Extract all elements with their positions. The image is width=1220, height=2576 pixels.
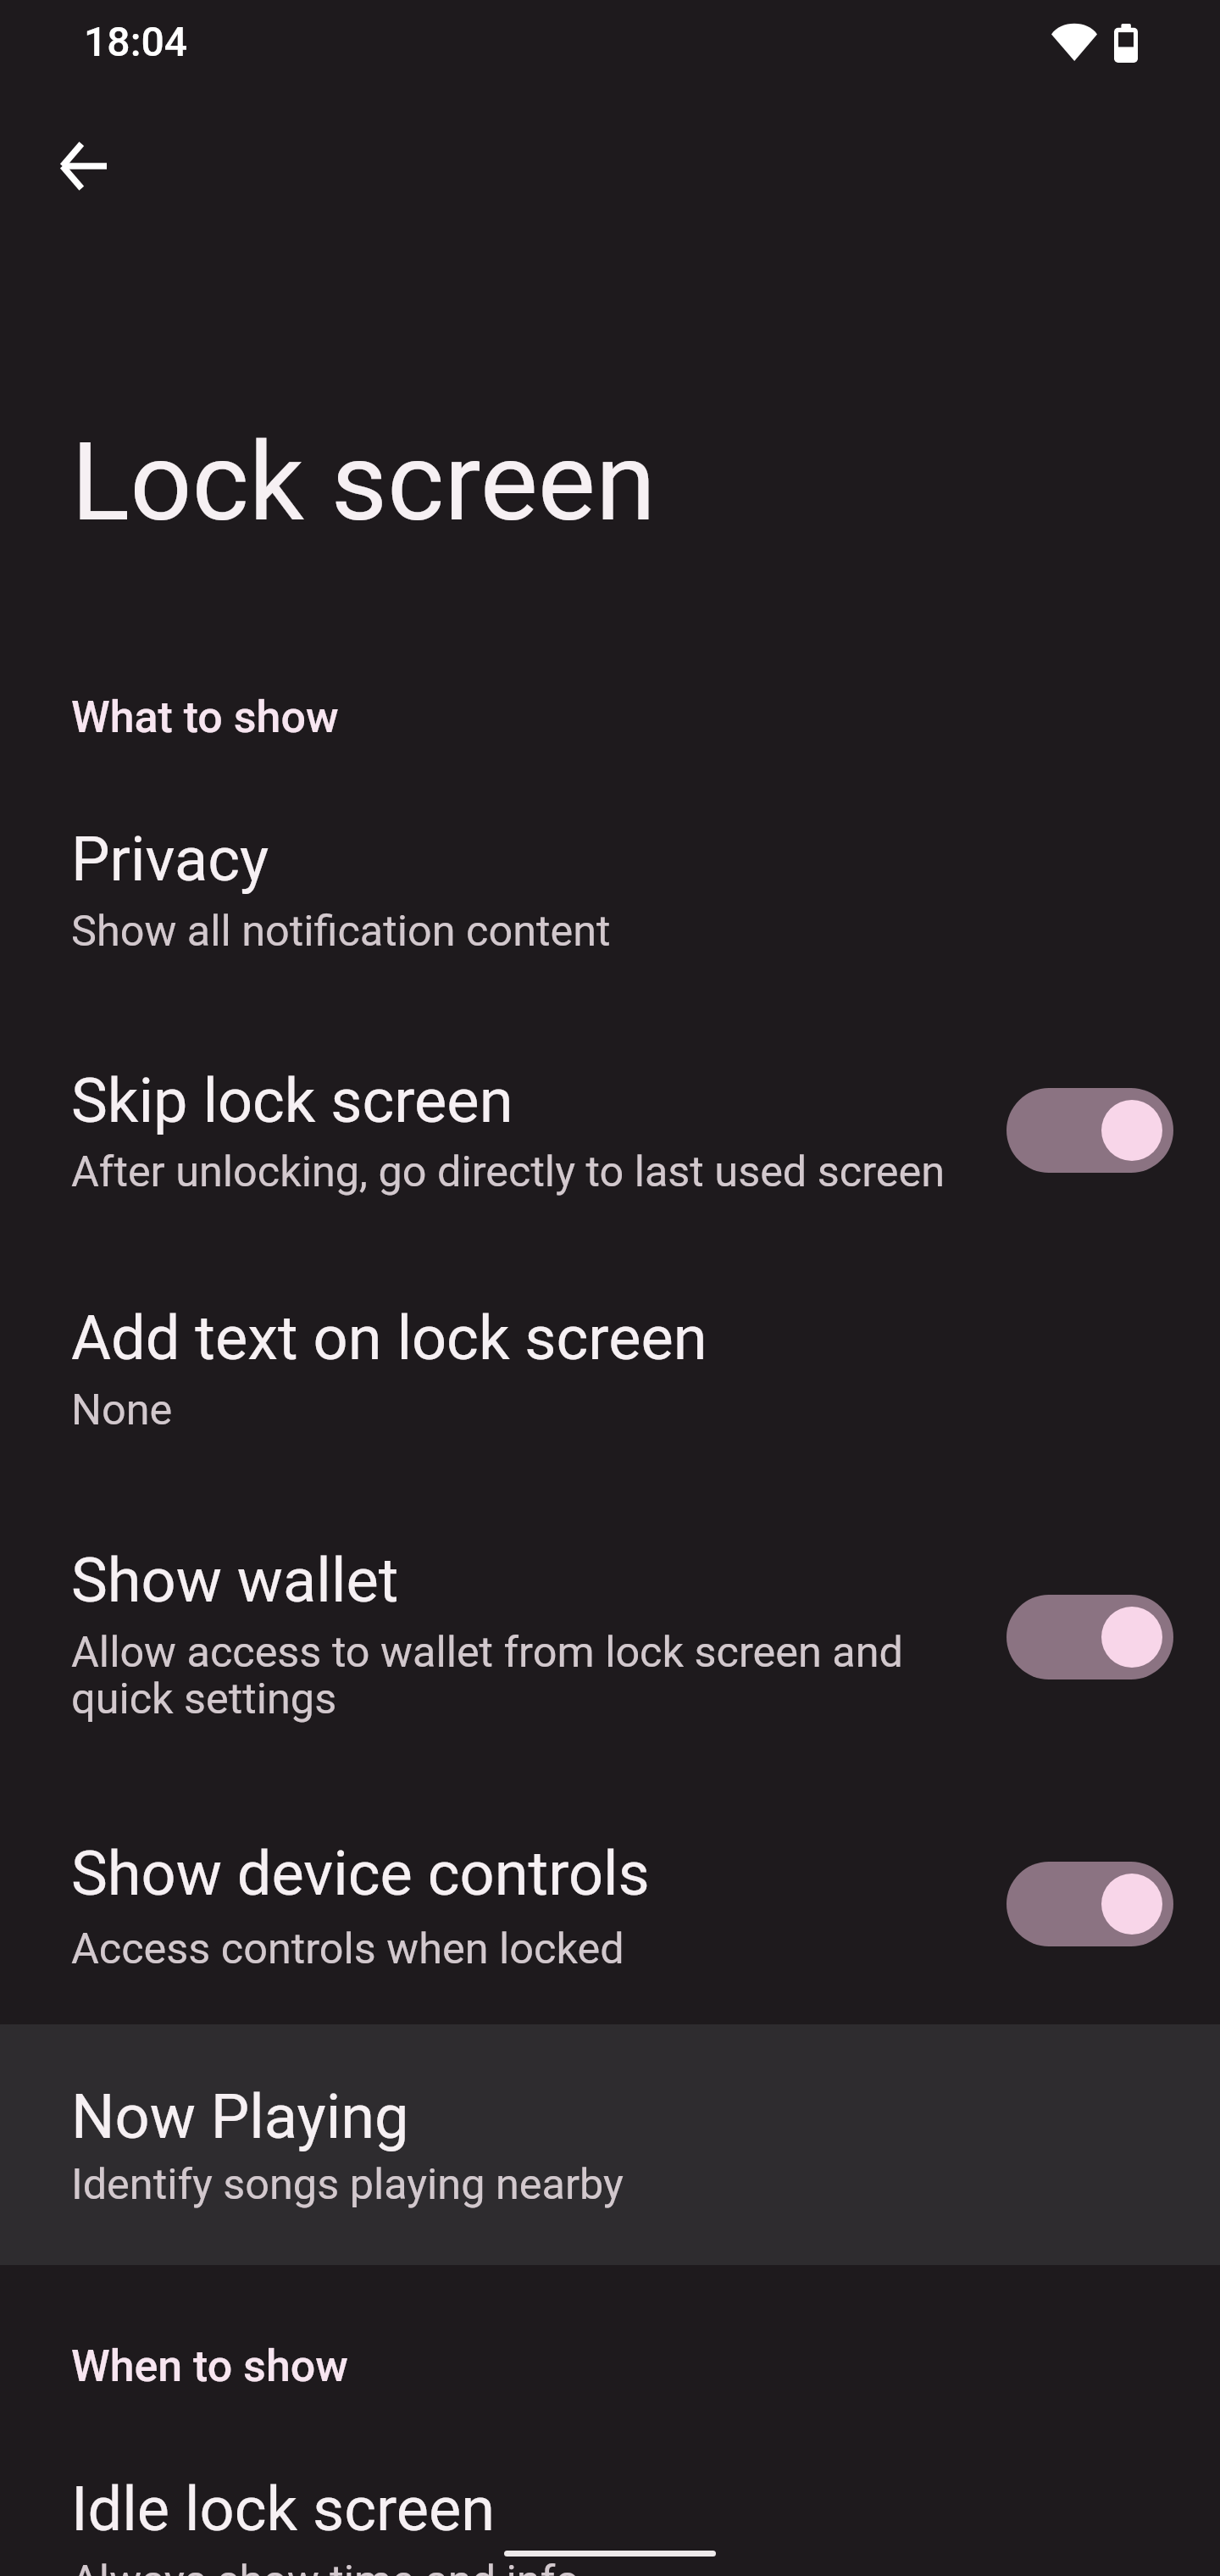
staticText: Allow access to wallet from lock screen … [71, 1629, 996, 1723]
staticText: After unlocking, go directly to last use… [71, 1149, 996, 1196]
button[interactable]: Show wallet [0, 1508, 1220, 1796]
staticText: Add text on lock screen [71, 1302, 707, 1374]
button[interactable]: Show wallet [1006, 1595, 1173, 1679]
staticText: What to show [71, 691, 339, 743]
staticText: Show device controls [71, 1838, 650, 1910]
staticText: Idle lock screen [71, 2473, 496, 2545]
staticText: Identify songs playing nearby [71, 2162, 996, 2208]
staticText: Skip lock screen [71, 1065, 513, 1137]
staticText: Privacy [71, 824, 269, 896]
staticText: Lock screen [71, 419, 656, 547]
button[interactable]: Now Playing [0, 2024, 1220, 2265]
staticText: 18:04 [84, 18, 188, 65]
staticText: Show all notification content [71, 908, 996, 955]
staticText: None [71, 1387, 996, 1434]
button[interactable]: Show device controls [1006, 1862, 1173, 1946]
button[interactable]: Privacy [0, 783, 1220, 1024]
button[interactable]: Skip lock screen [1006, 1088, 1173, 1173]
staticText: Always show time and info [71, 2558, 996, 2576]
button[interactable]: Show device controls [0, 1796, 1220, 2024]
staticText: Show wallet [71, 1545, 399, 1617]
staticText: Access controls when locked [71, 1926, 996, 1973]
button[interactable]: Add text on lock screen [0, 1267, 1220, 1508]
button[interactable]: Skip lock screen [0, 1024, 1220, 1266]
staticText: When to show [71, 2340, 348, 2392]
staticText: Now Playing [71, 2081, 409, 2153]
button[interactable]: Idle lock screen [0, 2432, 1220, 2576]
button[interactable]: Back [0, 83, 166, 249]
